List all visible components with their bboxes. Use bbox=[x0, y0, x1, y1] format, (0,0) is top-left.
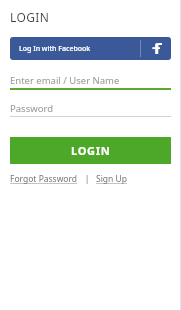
other: Log in with Facebook bbox=[141, 37, 171, 60]
staticText: Forgot Password bbox=[10, 173, 78, 185]
button[interactable]: Forgot Password bbox=[10, 173, 78, 185]
staticText: Password bbox=[10, 102, 53, 115]
button[interactable]: LOGIN bbox=[10, 137, 171, 164]
button[interactable]: Password bbox=[10, 101, 171, 117]
staticText: LOGIN bbox=[10, 9, 50, 25]
staticText: Log In with Facebook bbox=[19, 44, 91, 54]
button[interactable]: Enter email / User Name bbox=[10, 73, 171, 90]
staticText: | bbox=[78, 173, 96, 185]
staticText: LOGIN bbox=[71, 143, 111, 158]
button[interactable]: Log In with Facebook bbox=[10, 37, 171, 60]
staticText: Sign Up bbox=[96, 173, 127, 185]
button[interactable]: Sign Up bbox=[96, 173, 127, 185]
staticText: Enter email / User Name bbox=[10, 74, 120, 87]
